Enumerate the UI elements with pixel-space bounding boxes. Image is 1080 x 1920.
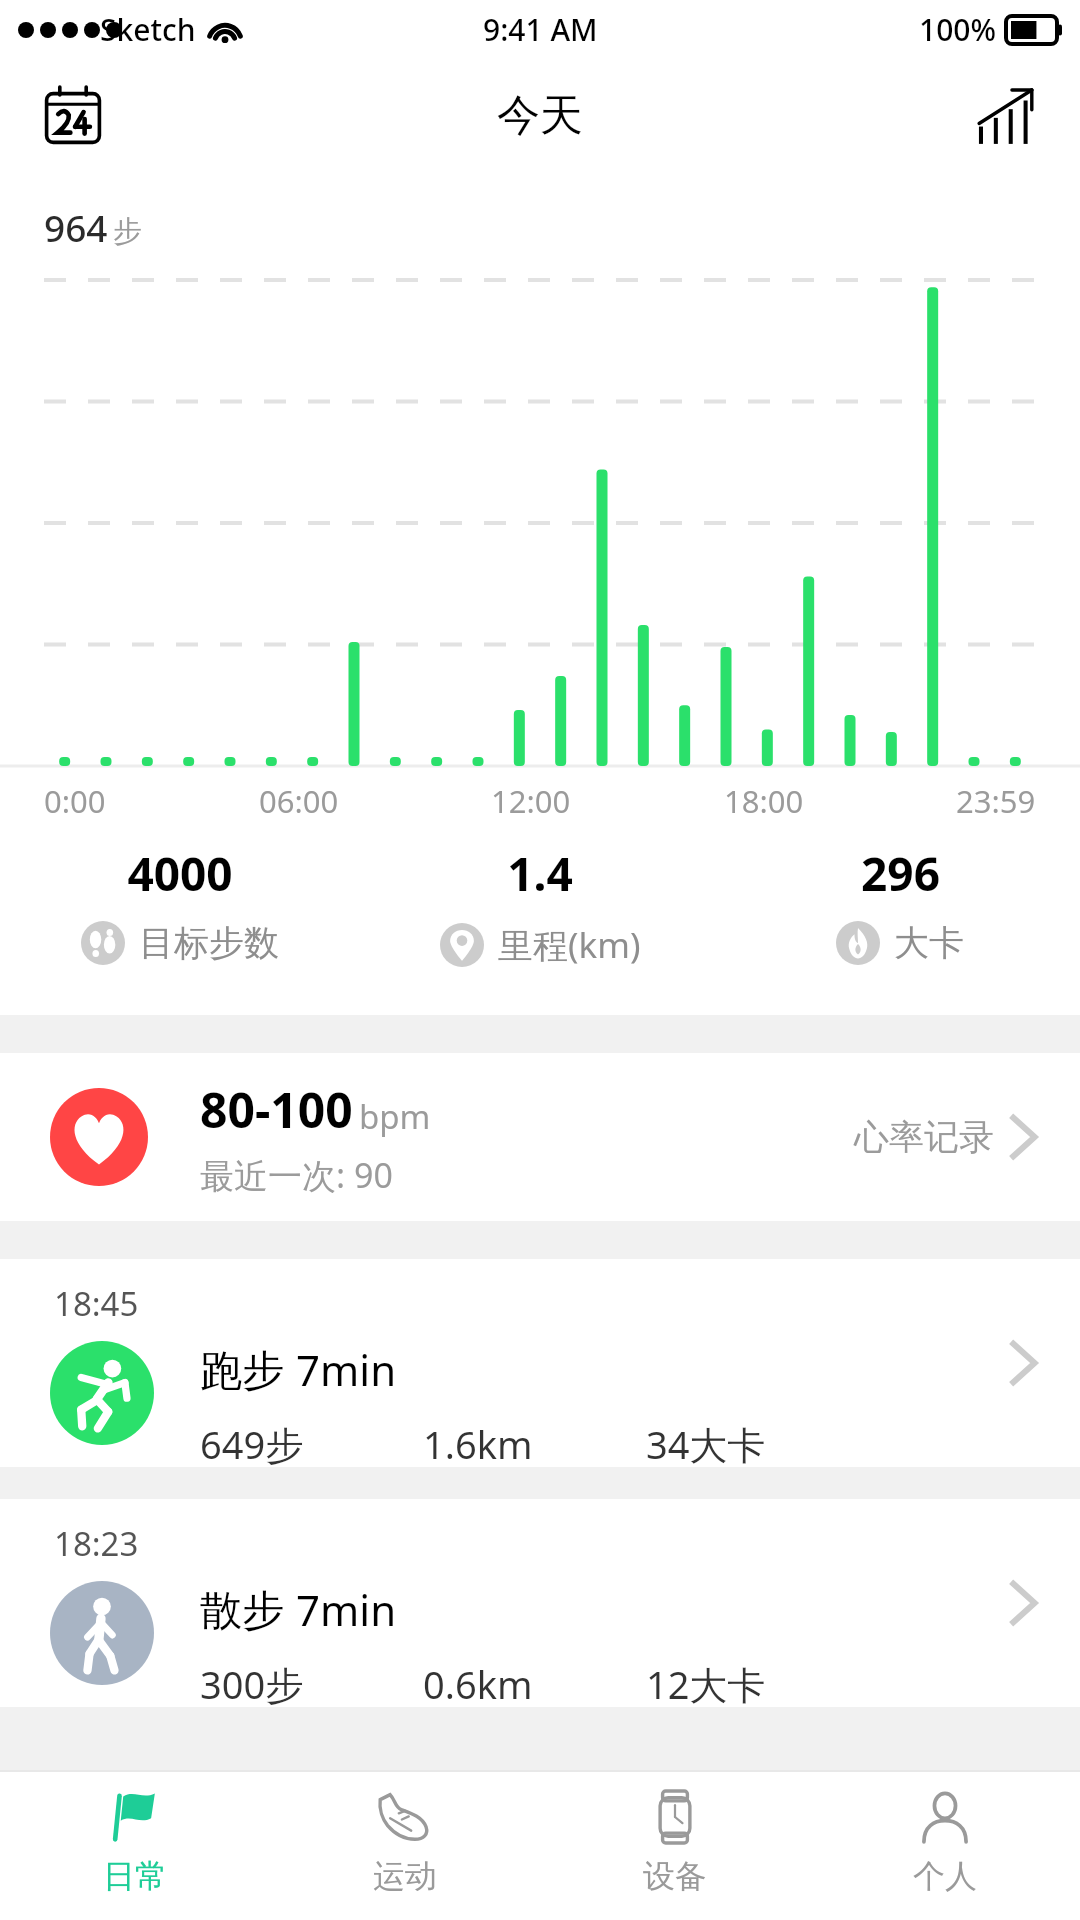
staticText: 06:00 <box>259 780 339 822</box>
staticText: 4000 <box>127 842 233 905</box>
staticText: 12:00 <box>491 780 571 822</box>
button[interactable]: 运动 <box>270 1772 540 1896</box>
staticText: 大卡 <box>894 921 964 965</box>
staticText: 18:00 <box>724 780 804 822</box>
staticText: 步 <box>113 213 142 250</box>
staticText: 649步 <box>200 1418 423 1467</box>
staticText: 0.6km <box>423 1658 646 1707</box>
staticText: 运动 <box>373 1856 437 1896</box>
staticText: Sketch <box>100 9 196 50</box>
staticText: 0:00 <box>44 780 106 822</box>
staticText: 设备 <box>643 1856 707 1896</box>
button[interactable]: 18:45 <box>0 1259 1080 1467</box>
staticText: 300步 <box>200 1658 423 1707</box>
staticText: 18:23 <box>54 1521 139 1566</box>
staticText: 9:41 AM <box>483 9 598 50</box>
staticText: 心率记录 <box>854 1115 994 1159</box>
staticText: 7min <box>296 1581 397 1638</box>
button[interactable]: 1.4 <box>360 842 720 969</box>
button[interactable]: 80-100 <box>0 1053 1080 1221</box>
staticText: 1.4 <box>507 842 573 905</box>
button[interactable]: 18:23 <box>0 1499 1080 1707</box>
staticText: 跑步 <box>200 1345 284 1398</box>
button[interactable]: 4000 <box>0 842 360 965</box>
staticText: 散步 <box>200 1585 284 1638</box>
button[interactable]: Statistics <box>966 75 1048 157</box>
staticText: 23:59 <box>956 780 1036 822</box>
staticText: 12大卡 <box>646 1658 880 1707</box>
staticText: 18:45 <box>54 1281 139 1326</box>
staticText: 80-100 <box>200 1077 353 1142</box>
button[interactable]: 日常 <box>0 1772 270 1896</box>
button[interactable]: 296 <box>720 842 1080 965</box>
staticText: 100% <box>919 9 997 50</box>
staticText: 个人 <box>913 1856 977 1896</box>
staticText: 1.6km <box>423 1418 646 1467</box>
staticText: 里程(km) <box>498 921 641 969</box>
staticText: 最近一次: 90 <box>200 1152 393 1198</box>
staticText: bpm <box>359 1094 431 1139</box>
staticText: 今天 <box>497 89 583 143</box>
staticText: 964 <box>44 202 108 252</box>
staticText: 296 <box>861 842 940 905</box>
staticText: 日常 <box>103 1856 167 1896</box>
button[interactable]: Calendar <box>32 75 114 157</box>
button[interactable]: 个人 <box>810 1772 1080 1896</box>
staticText: 7min <box>296 1341 397 1398</box>
staticText: 目标步数 <box>139 921 279 965</box>
button[interactable]: 设备 <box>540 1772 810 1896</box>
staticText: 34大卡 <box>646 1418 880 1467</box>
